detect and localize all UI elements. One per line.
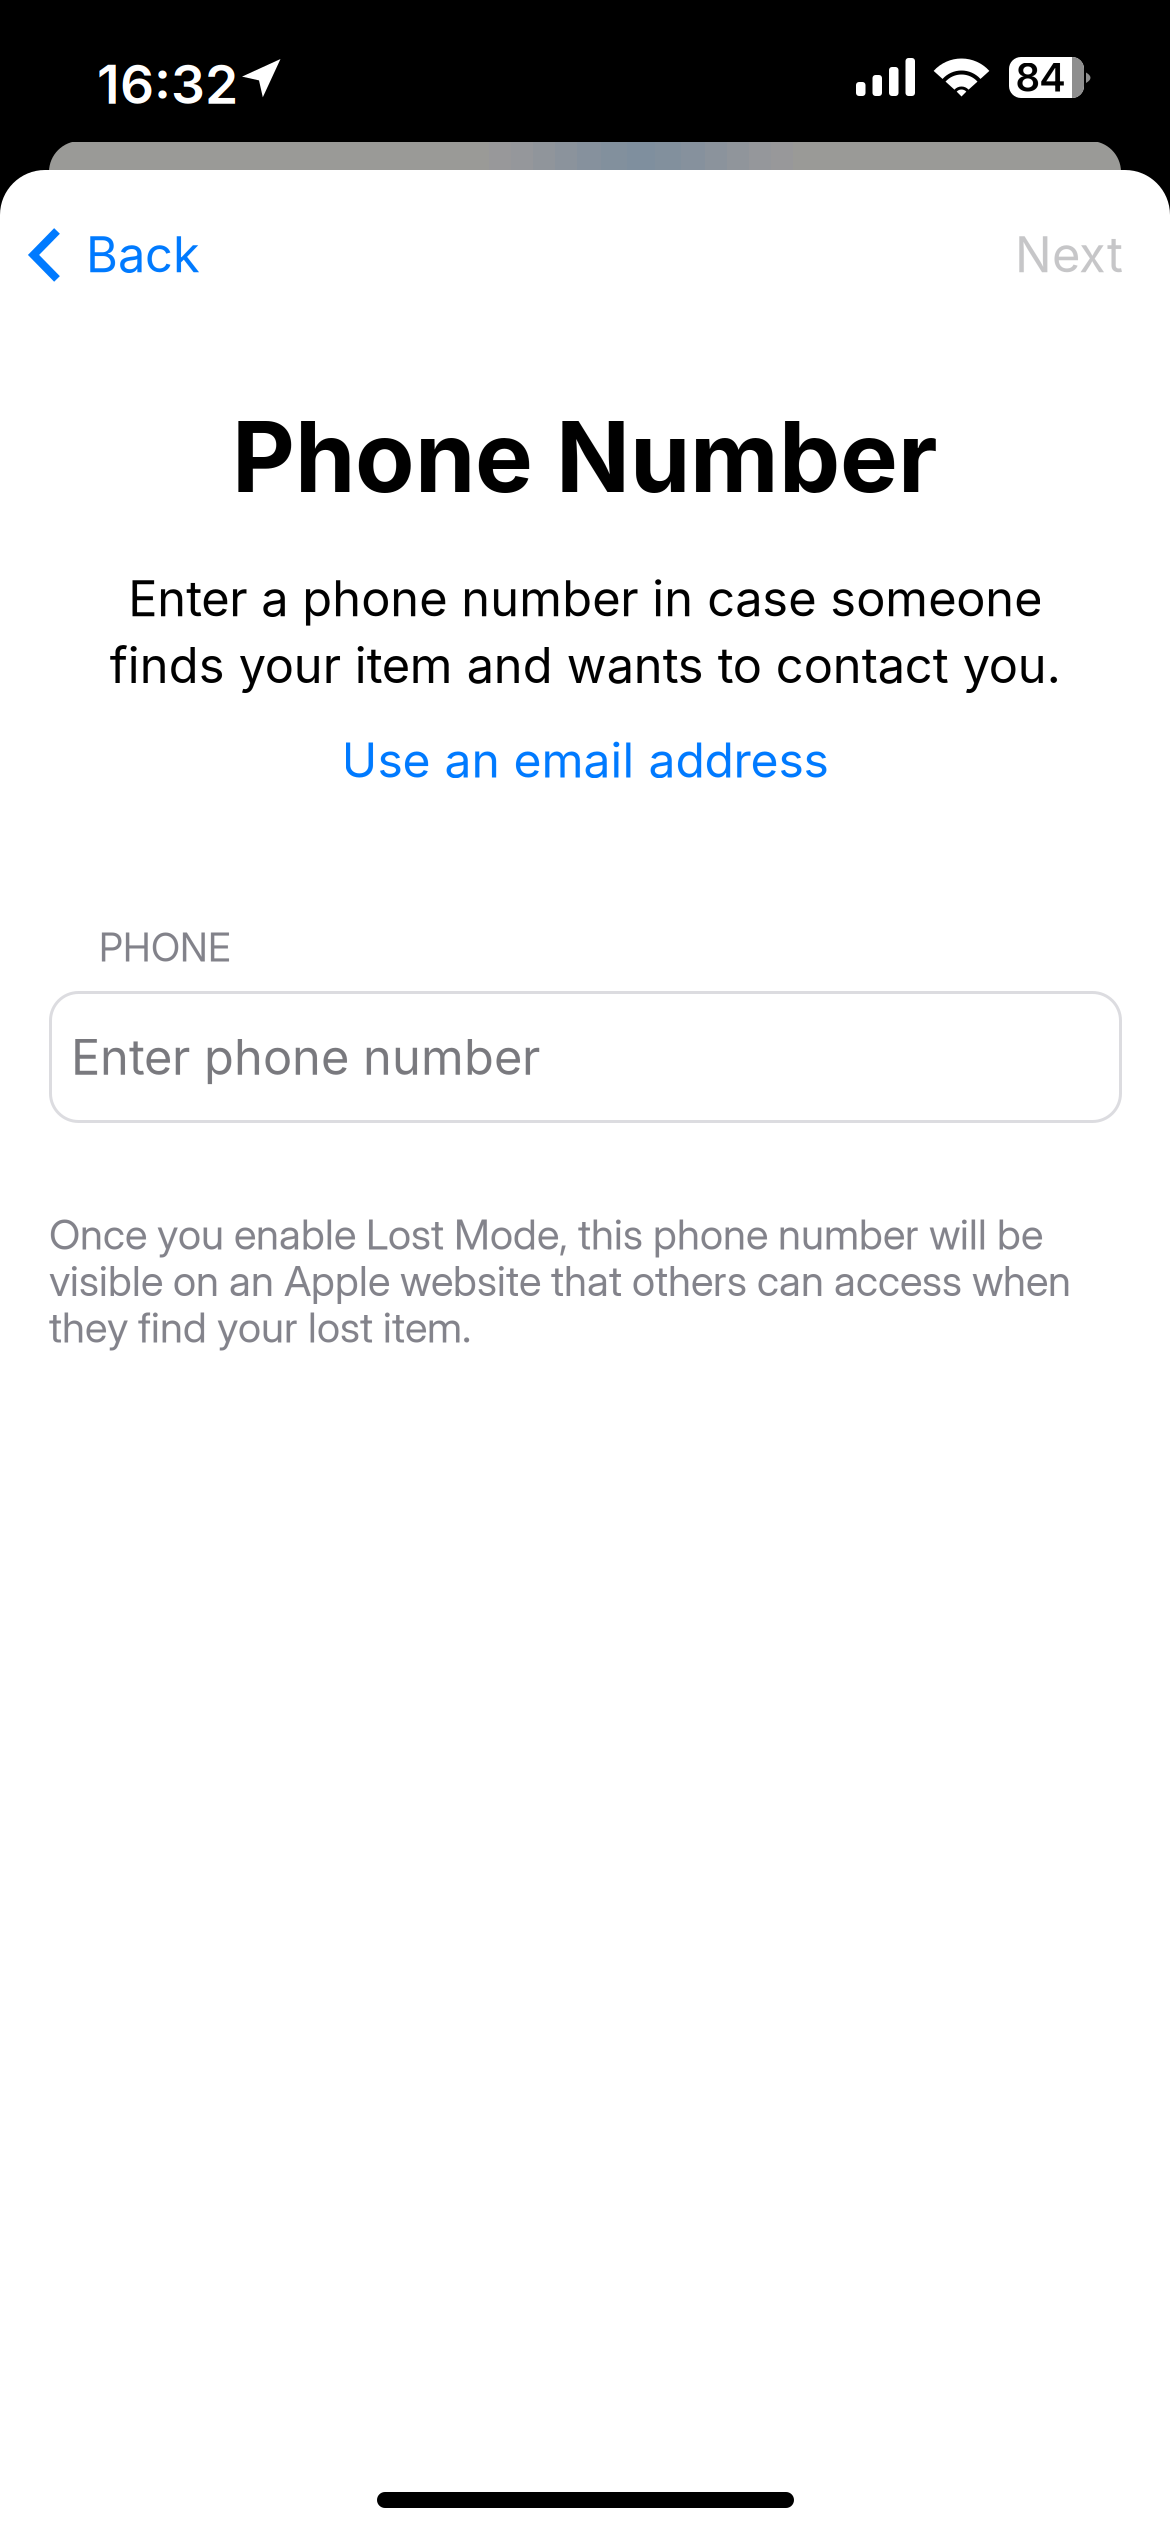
staticText: 84 (1016, 54, 1065, 101)
button[interactable]: Use an email address (305, 722, 865, 798)
staticText: PHONE (99, 924, 231, 971)
staticText: Next (1015, 225, 1123, 284)
staticText: Once you enable Lost Mode, this phone nu… (49, 1209, 1071, 1352)
staticText: Back (86, 225, 200, 284)
button[interactable]: Next (989, 206, 1149, 303)
staticText: Use an email address (341, 731, 828, 789)
staticText: 16:32 (97, 52, 238, 116)
staticText: Phone Number (232, 398, 938, 515)
staticText: Enter a phone number in case someone fin… (109, 569, 1060, 695)
staticText: Enter phone number (71, 1028, 540, 1086)
button[interactable]: Back (0, 206, 224, 303)
